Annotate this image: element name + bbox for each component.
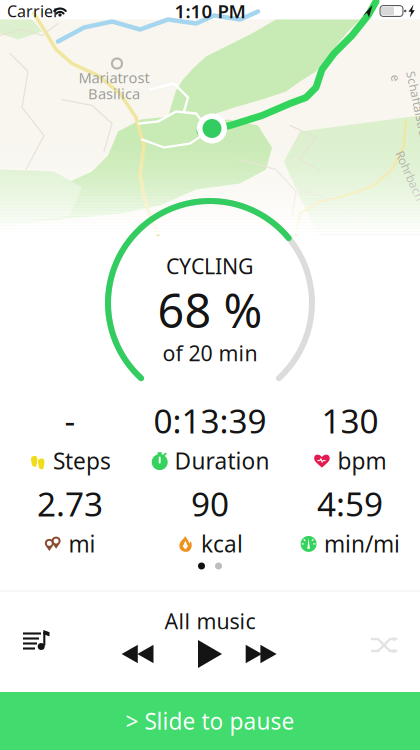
staticText: Schaftalstraße: [371, 96, 420, 127]
staticText: Rohrbach: [383, 167, 420, 183]
staticText: kcal: [201, 529, 243, 559]
staticText: 90: [191, 481, 229, 526]
staticText: 4:59: [317, 481, 383, 526]
button[interactable]: Shuffle: [372, 637, 400, 655]
button[interactable]: > Slide to pause: [0, 692, 420, 750]
staticText: 1:10 PM: [174, 0, 245, 23]
staticText: bpm: [337, 446, 386, 476]
staticText: Basilica: [88, 84, 140, 103]
button[interactable]: Playlist: [14, 621, 58, 661]
staticText: -: [64, 398, 75, 443]
staticText: 130: [321, 398, 378, 443]
button[interactable]: Fast forward: [246, 632, 298, 676]
staticText: Carrier: [7, 0, 60, 22]
staticText: Steps: [53, 446, 111, 476]
staticText: CYCLING: [166, 252, 254, 280]
staticText: min/mi: [324, 529, 400, 559]
staticText: 2.73: [37, 481, 103, 526]
staticText: All music: [164, 607, 255, 635]
staticText: 0:13:39: [153, 398, 266, 443]
staticText: Duration: [174, 446, 269, 476]
staticText: > Slide to pause: [125, 706, 294, 736]
staticText: mi: [68, 529, 95, 559]
staticText: Mariatrost: [78, 68, 149, 87]
button[interactable]: Rewind: [122, 632, 174, 676]
staticText: 68 %: [157, 279, 262, 341]
staticText: of 20 min: [162, 339, 257, 367]
button[interactable]: Play: [187, 631, 233, 677]
